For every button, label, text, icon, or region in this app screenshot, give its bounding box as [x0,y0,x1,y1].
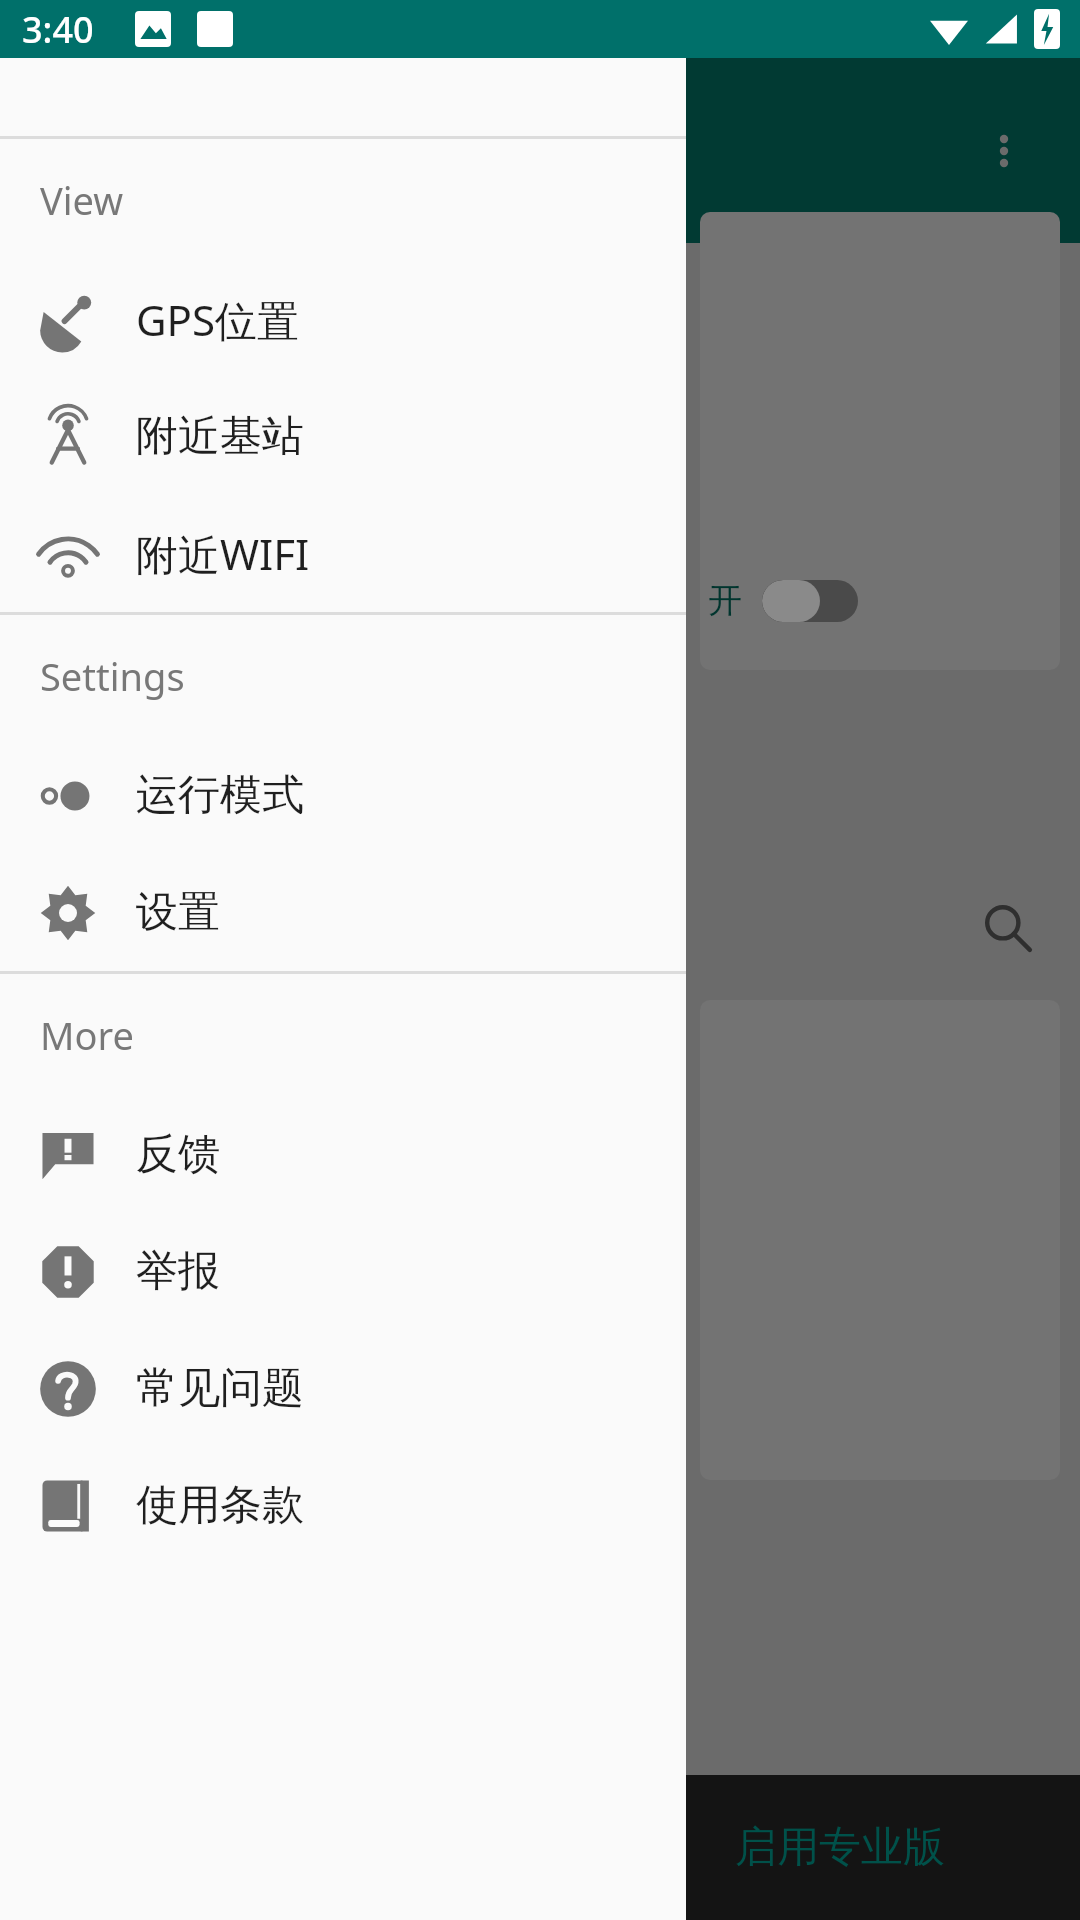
staticText: Settings [40,650,185,702]
staticText: 附近WIFI [136,525,310,582]
staticText: 设置 [136,886,220,939]
staticText: 独立模拟 [136,11,304,64]
staticText: 举报 [136,1245,220,1298]
button[interactable]: 使用条款 [0,1447,686,1564]
staticText: 开 [708,579,742,622]
button[interactable]: GPS位置 [0,261,686,378]
staticText: 反馈 [136,1128,220,1181]
button[interactable]: 开 [700,212,1060,670]
button[interactable]: 独立模拟 [0,0,686,76]
staticText: GPS位置 [136,291,300,348]
staticText: 运行模式 [136,769,304,822]
staticText: 常见问题 [136,1362,304,1415]
button[interactable]: 举报 [0,1213,686,1330]
button[interactable]: 运行模式 [0,737,686,854]
staticText: 附近基站 [136,410,304,463]
button[interactable]: 反馈 [0,1096,686,1213]
button[interactable]: Search [960,880,1056,976]
button[interactable] [762,580,858,622]
staticText: View [40,174,124,226]
button[interactable]: 附近基站 [0,378,686,495]
staticText: 启用专业版 [735,1821,945,1874]
button[interactable]: 常见问题 [0,1330,686,1447]
staticText: 使用条款 [136,1479,304,1532]
staticText: 3:40 [22,5,94,54]
button[interactable]: 启用专业版 [0,1775,1080,1920]
button[interactable]: 附近WIFI [0,495,686,612]
button[interactable]: More options [956,103,1052,199]
button[interactable]: 设置 [0,854,686,971]
staticText: More [40,1009,134,1061]
